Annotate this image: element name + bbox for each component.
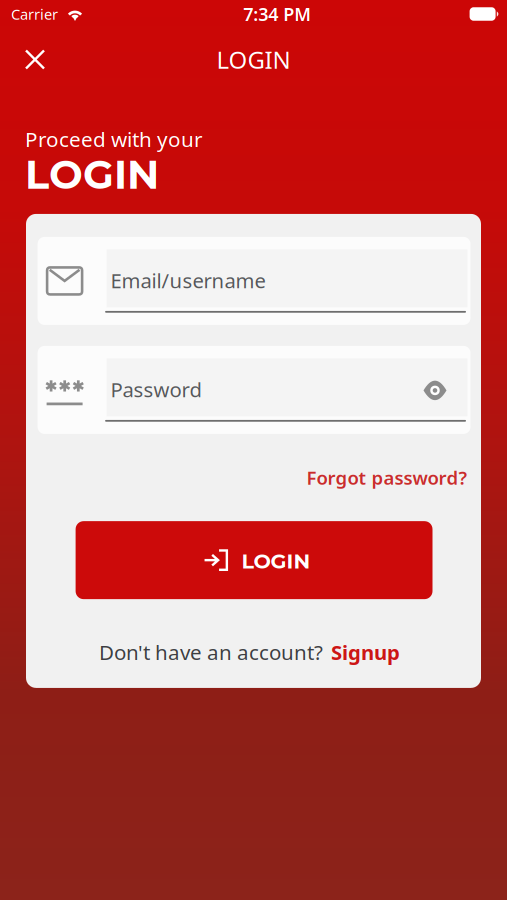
staticText: Signup [331, 638, 400, 666]
button[interactable]: LOGIN [76, 521, 432, 599]
staticText: Password [111, 376, 202, 403]
staticText: 7:34 PM [243, 2, 311, 26]
staticText: Forgot password? [306, 465, 467, 490]
staticText: LOGIN [241, 549, 310, 574]
staticText: LOGIN [216, 43, 290, 76]
staticText: Proceed with your [25, 125, 203, 153]
staticText: Carrier [11, 4, 58, 24]
staticText: LOGIN [25, 150, 159, 199]
staticText: Don't have an account? [99, 638, 323, 666]
staticText: Email/username [111, 267, 266, 294]
button[interactable]: Forgot password? [306, 465, 467, 490]
button[interactable]: Close [12, 36, 58, 82]
button[interactable]: Show password [416, 375, 459, 400]
button[interactable]: Signup [331, 638, 400, 666]
